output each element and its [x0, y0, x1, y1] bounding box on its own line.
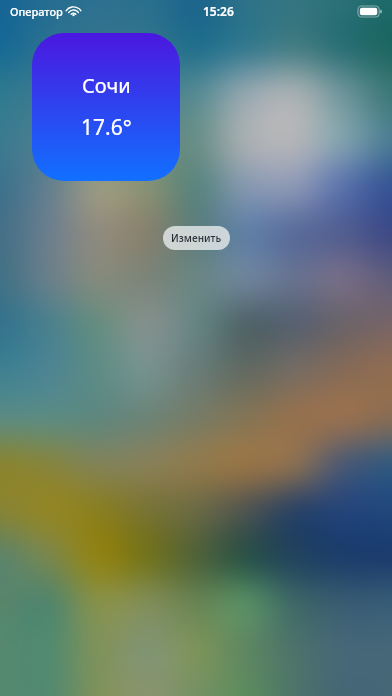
staticText: Сочи	[82, 72, 131, 99]
staticText: 17.6°	[81, 113, 132, 142]
button[interactable]: Сочи	[32, 33, 180, 181]
staticText: 15:26	[203, 3, 234, 19]
button[interactable]: Изменить	[163, 226, 230, 250]
staticText: Оператор	[10, 4, 63, 19]
staticText: Изменить	[171, 231, 222, 245]
